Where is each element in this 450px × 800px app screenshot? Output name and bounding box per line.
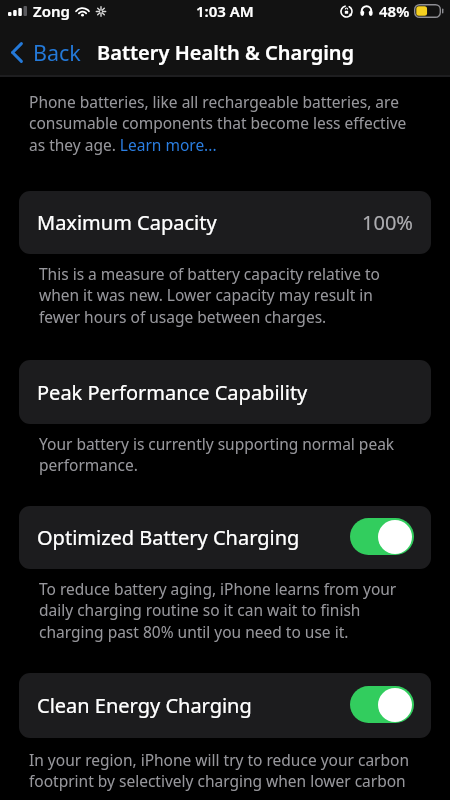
staticText: Battery Health & Charging <box>97 39 355 66</box>
staticText: Maximum Capacity <box>37 209 217 236</box>
staticText: 1:03 AM <box>196 1 254 21</box>
staticText: To reduce battery aging, iPhone learns f… <box>39 578 407 643</box>
staticText: Peak Performance Capability <box>37 379 308 406</box>
button[interactable]: Maximum Capacity <box>19 191 431 254</box>
staticText: Clean Energy Charging <box>37 692 252 719</box>
staticText: This is a measure of battery capacity re… <box>39 263 407 328</box>
button[interactable]: Back <box>0 32 91 75</box>
button[interactable]: Optimized Battery Charging, on <box>350 518 414 555</box>
button[interactable]: Clean Energy Charging <box>19 673 431 738</box>
staticText: 48% <box>379 1 410 21</box>
staticText: Phone batteries, like all rechargeable b… <box>29 91 417 156</box>
staticText: Zong <box>33 1 70 21</box>
button[interactable]: Optimized Battery Charging <box>19 506 431 569</box>
button[interactable]: Peak Performance Capability <box>19 360 431 424</box>
staticText: Back <box>33 38 81 67</box>
staticText: In your region, iPhone will try to reduc… <box>29 749 415 792</box>
staticText: Optimized Battery Charging <box>37 524 300 551</box>
staticText: 100% <box>362 209 413 236</box>
button[interactable]: Learn more about battery health <box>120 136 216 156</box>
staticText: Your battery is currently supporting nor… <box>39 433 407 476</box>
button[interactable]: Clean Energy Charging, on <box>350 686 414 723</box>
